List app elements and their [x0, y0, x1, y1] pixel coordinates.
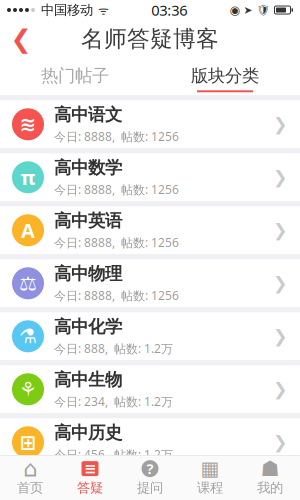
staticText: ≡	[84, 460, 96, 477]
staticText: 今日: 8888, 帖数: 1256	[54, 181, 179, 197]
staticText: 热门帖子	[41, 65, 109, 86]
staticText: 高中历史	[54, 422, 122, 443]
staticText: ❯	[273, 167, 288, 187]
staticText: 高中化学	[54, 316, 122, 337]
button[interactable]: 热门帖子	[0, 65, 150, 92]
button[interactable]: ⚗	[0, 312, 300, 360]
staticText: 课程	[197, 480, 223, 496]
staticText: 名师答疑博客	[81, 25, 219, 53]
staticText: ⊞	[19, 431, 36, 454]
button[interactable]: ⌂	[0, 460, 60, 496]
staticText: ≋	[19, 113, 36, 136]
staticText: 提问	[137, 480, 163, 496]
staticText: ❯	[273, 326, 288, 346]
button[interactable]: ⊞	[0, 418, 300, 466]
staticText: ◉	[229, 3, 239, 17]
staticText: 高中语文	[54, 104, 122, 125]
staticText: ❯	[273, 379, 288, 399]
staticText: 今日: 234, 帖数: 1.2万	[54, 393, 173, 409]
staticText: 首页	[17, 480, 43, 496]
staticText: 高中地理	[54, 475, 122, 496]
button[interactable]: ≋	[0, 100, 300, 148]
staticText: 今日: 8888, 帖数: 1256	[54, 128, 179, 144]
button[interactable]: ⚖	[0, 259, 300, 307]
staticText: 今日: 8888, 帖数: 1256	[54, 287, 179, 303]
staticText: A	[21, 217, 35, 244]
staticText: ⚖	[19, 272, 37, 295]
staticText: 高中生物	[54, 369, 122, 390]
staticText: ❯	[273, 273, 288, 293]
staticText: ☗	[260, 456, 279, 481]
button[interactable]: 版块分类	[150, 65, 300, 92]
staticText: ◍	[19, 484, 36, 500]
staticText: ❯	[273, 114, 288, 134]
staticText: ⚗	[19, 325, 37, 348]
staticText: ❯	[273, 485, 288, 500]
staticText: ❯	[273, 220, 288, 240]
staticText: 03:36	[151, 0, 187, 20]
staticText: ⚘	[19, 378, 37, 401]
staticText: ?	[146, 459, 153, 478]
staticText: ➤	[243, 4, 252, 16]
staticText: 高中物理	[54, 263, 122, 284]
staticText: 今日: 456, 帖数: 1.2万	[54, 446, 173, 462]
staticText: ▦	[200, 457, 219, 480]
staticText: ⌂	[23, 456, 37, 481]
staticText: 🛡	[256, 4, 270, 16]
staticText: ❯	[273, 432, 288, 452]
button[interactable]: ?	[120, 460, 180, 496]
staticText: ᯤ	[95, 2, 109, 18]
button[interactable]: ☗	[240, 460, 300, 496]
button[interactable]: ⚘	[0, 365, 300, 413]
staticText: ❮	[10, 25, 31, 53]
button[interactable]: ≡	[60, 460, 120, 496]
button[interactable]: ◍	[0, 471, 300, 500]
staticText: 我的	[257, 480, 283, 496]
button[interactable]: π	[0, 153, 300, 201]
button[interactable]: Back	[0, 20, 42, 58]
staticText: 答疑	[77, 480, 103, 496]
staticText: 中国移动	[37, 2, 93, 18]
staticText: 高中英语	[54, 210, 122, 231]
button[interactable]: ▦	[180, 460, 240, 496]
staticText: 版块分类	[191, 65, 259, 86]
button[interactable]: A	[0, 206, 300, 254]
staticText: 今日: 888, 帖数: 1.2万	[54, 340, 173, 356]
staticText: 高中数学	[54, 157, 122, 178]
staticText: π	[20, 164, 35, 191]
staticText: 今日: 8888, 帖数: 1256	[54, 234, 179, 250]
